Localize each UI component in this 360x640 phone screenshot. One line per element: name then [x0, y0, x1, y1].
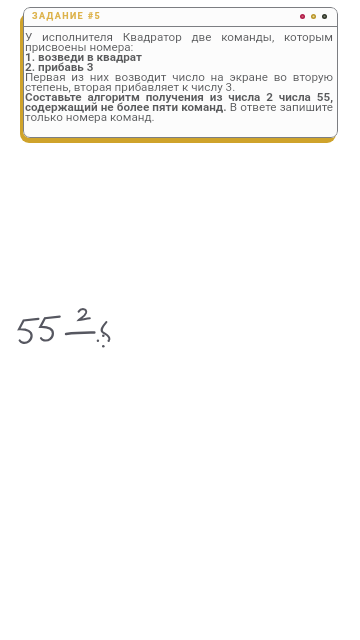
- staticText: ЗАДАНИЕ #5: [32, 11, 102, 22]
- other: Рукописный ответ: [14, 300, 124, 355]
- staticText: У исполнителя Квадратор две команды, кот…: [25, 30, 333, 123]
- button[interactable]: ЗАДАНИЕ #5: [23, 7, 338, 138]
